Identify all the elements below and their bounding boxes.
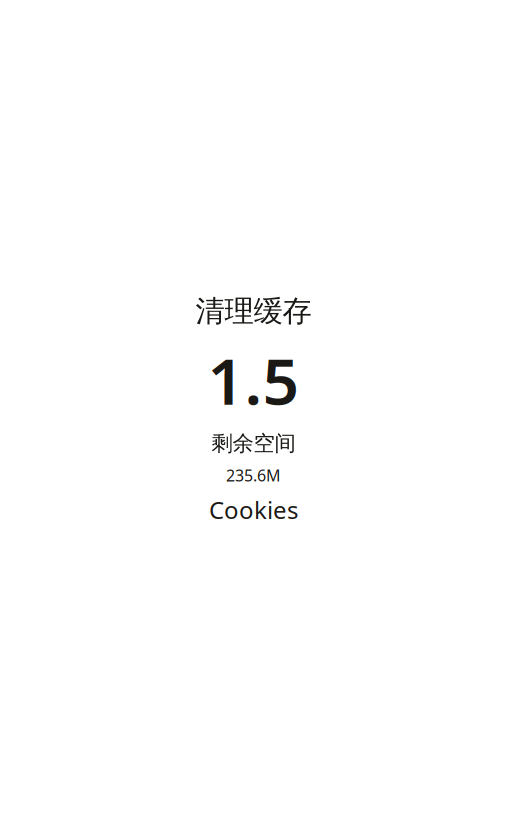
staticText: 剩余空间 bbox=[211, 430, 295, 456]
staticText: 1.5 bbox=[207, 337, 299, 422]
staticText: Cookies bbox=[209, 494, 298, 526]
staticText: 清理缓存 bbox=[195, 293, 311, 329]
staticText: 235.6M bbox=[226, 465, 281, 486]
